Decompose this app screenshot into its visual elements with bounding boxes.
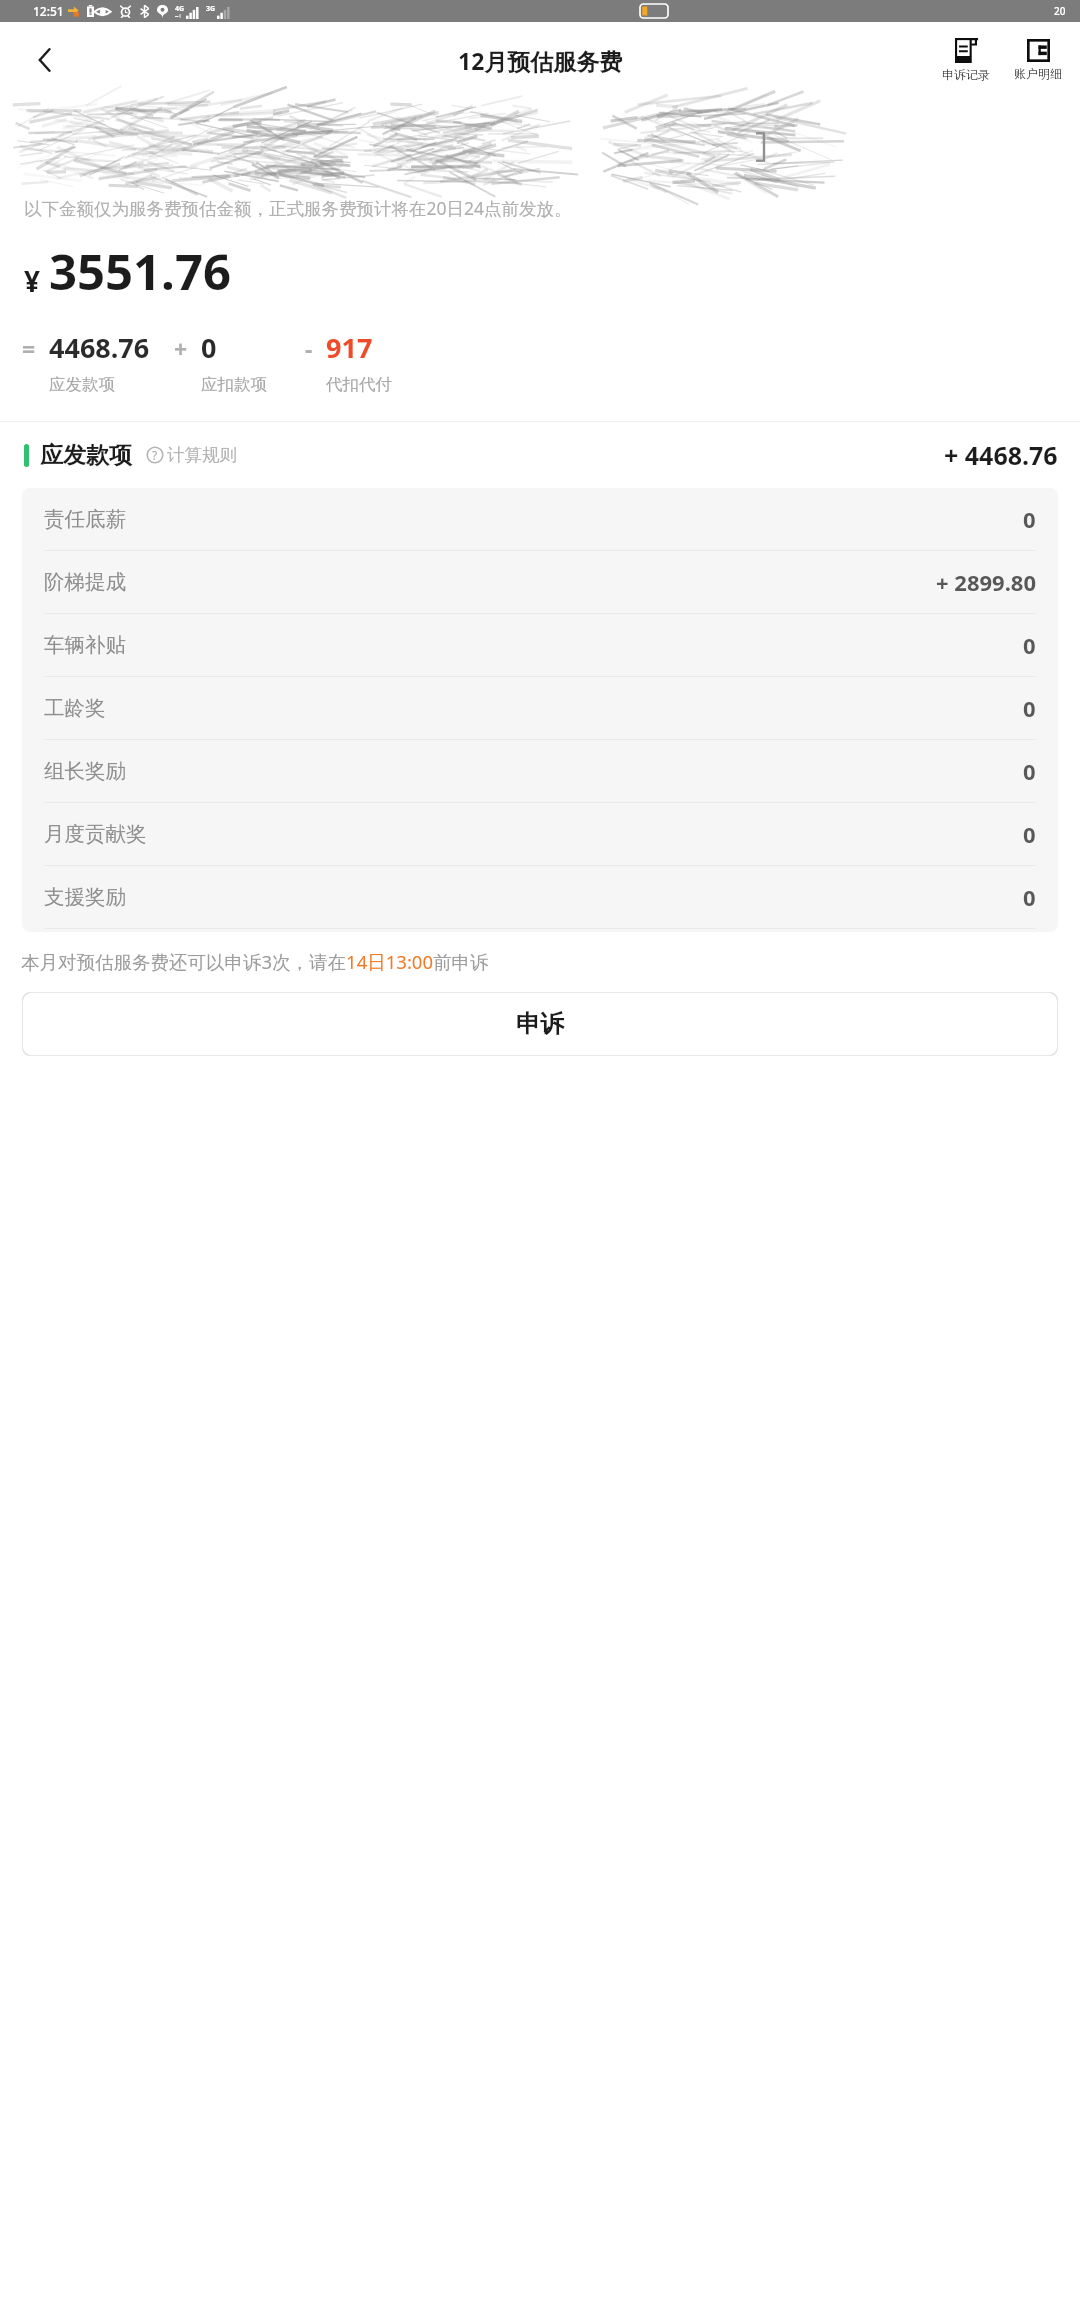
staticText: 代扣代付: [326, 374, 392, 395]
staticText: 本月对预估服务费还可以申诉3次，请在14日13:00前申诉: [21, 949, 1059, 974]
staticText: 0: [1023, 504, 1036, 534]
button[interactable]: 阶梯提成: [22, 551, 1058, 613]
button[interactable]: 组长奖励: [22, 740, 1058, 802]
staticText: 应发款项: [49, 374, 115, 395]
staticText: 车辆补贴: [44, 632, 126, 658]
staticText: 917: [326, 329, 373, 366]
staticText: 责任底薪: [44, 506, 126, 532]
staticText: =: [22, 333, 36, 364]
staticText: 3G: [206, 4, 216, 14]
staticText: 月度贡献奖: [44, 821, 147, 847]
button[interactable]: ?: [145, 440, 238, 470]
staticText: ¥: [24, 262, 41, 300]
staticText: 0: [1023, 630, 1036, 660]
staticText: 以下金额仅为服务费预估金额，正式服务费预计将在20日24点前发放。: [24, 196, 1058, 220]
staticText: + 4468.76: [944, 438, 1058, 472]
staticText: 应发款项: [40, 441, 132, 470]
button[interactable]: Back: [20, 36, 68, 84]
staticText: 20: [1054, 4, 1066, 18]
staticText: 0: [1023, 882, 1036, 912]
staticText: + 2899.80: [936, 567, 1036, 597]
staticText: 0: [201, 329, 217, 366]
staticText: 4G: [175, 4, 185, 14]
button[interactable]: 月度贡献奖: [22, 803, 1058, 865]
staticText: 0: [1023, 693, 1036, 723]
staticText: ?: [152, 447, 158, 463]
staticText: 12:51: [33, 3, 64, 19]
staticText: 账户明细: [1014, 66, 1062, 81]
staticText: 支援奖励: [44, 884, 126, 910]
button[interactable]: Complaint records: [936, 36, 996, 84]
staticText: 计算规则: [167, 444, 237, 466]
staticText: 申诉: [516, 1009, 564, 1039]
staticText: 0: [1023, 756, 1036, 786]
staticText: 申诉记录: [942, 67, 990, 82]
staticText: +: [174, 333, 188, 364]
staticText: 12月预估服务费: [458, 45, 623, 76]
button[interactable]: 支援奖励: [22, 866, 1058, 928]
staticText: 4468.76: [49, 329, 150, 366]
button[interactable]: 申诉: [22, 992, 1058, 1056]
staticText: 组长奖励: [44, 758, 126, 784]
staticText: 阶梯提成: [44, 569, 126, 595]
button[interactable]: 工龄奖: [22, 677, 1058, 739]
button[interactable]: 车辆补贴: [22, 614, 1058, 676]
staticText: 工龄奖: [44, 695, 106, 721]
staticText: -: [305, 333, 313, 364]
staticText: 0: [1023, 819, 1036, 849]
button[interactable]: 责任底薪: [22, 488, 1058, 550]
staticText: 应扣款项: [201, 374, 267, 395]
staticText: 3551.76: [49, 238, 231, 305]
button[interactable]: Account details: [1008, 37, 1068, 83]
